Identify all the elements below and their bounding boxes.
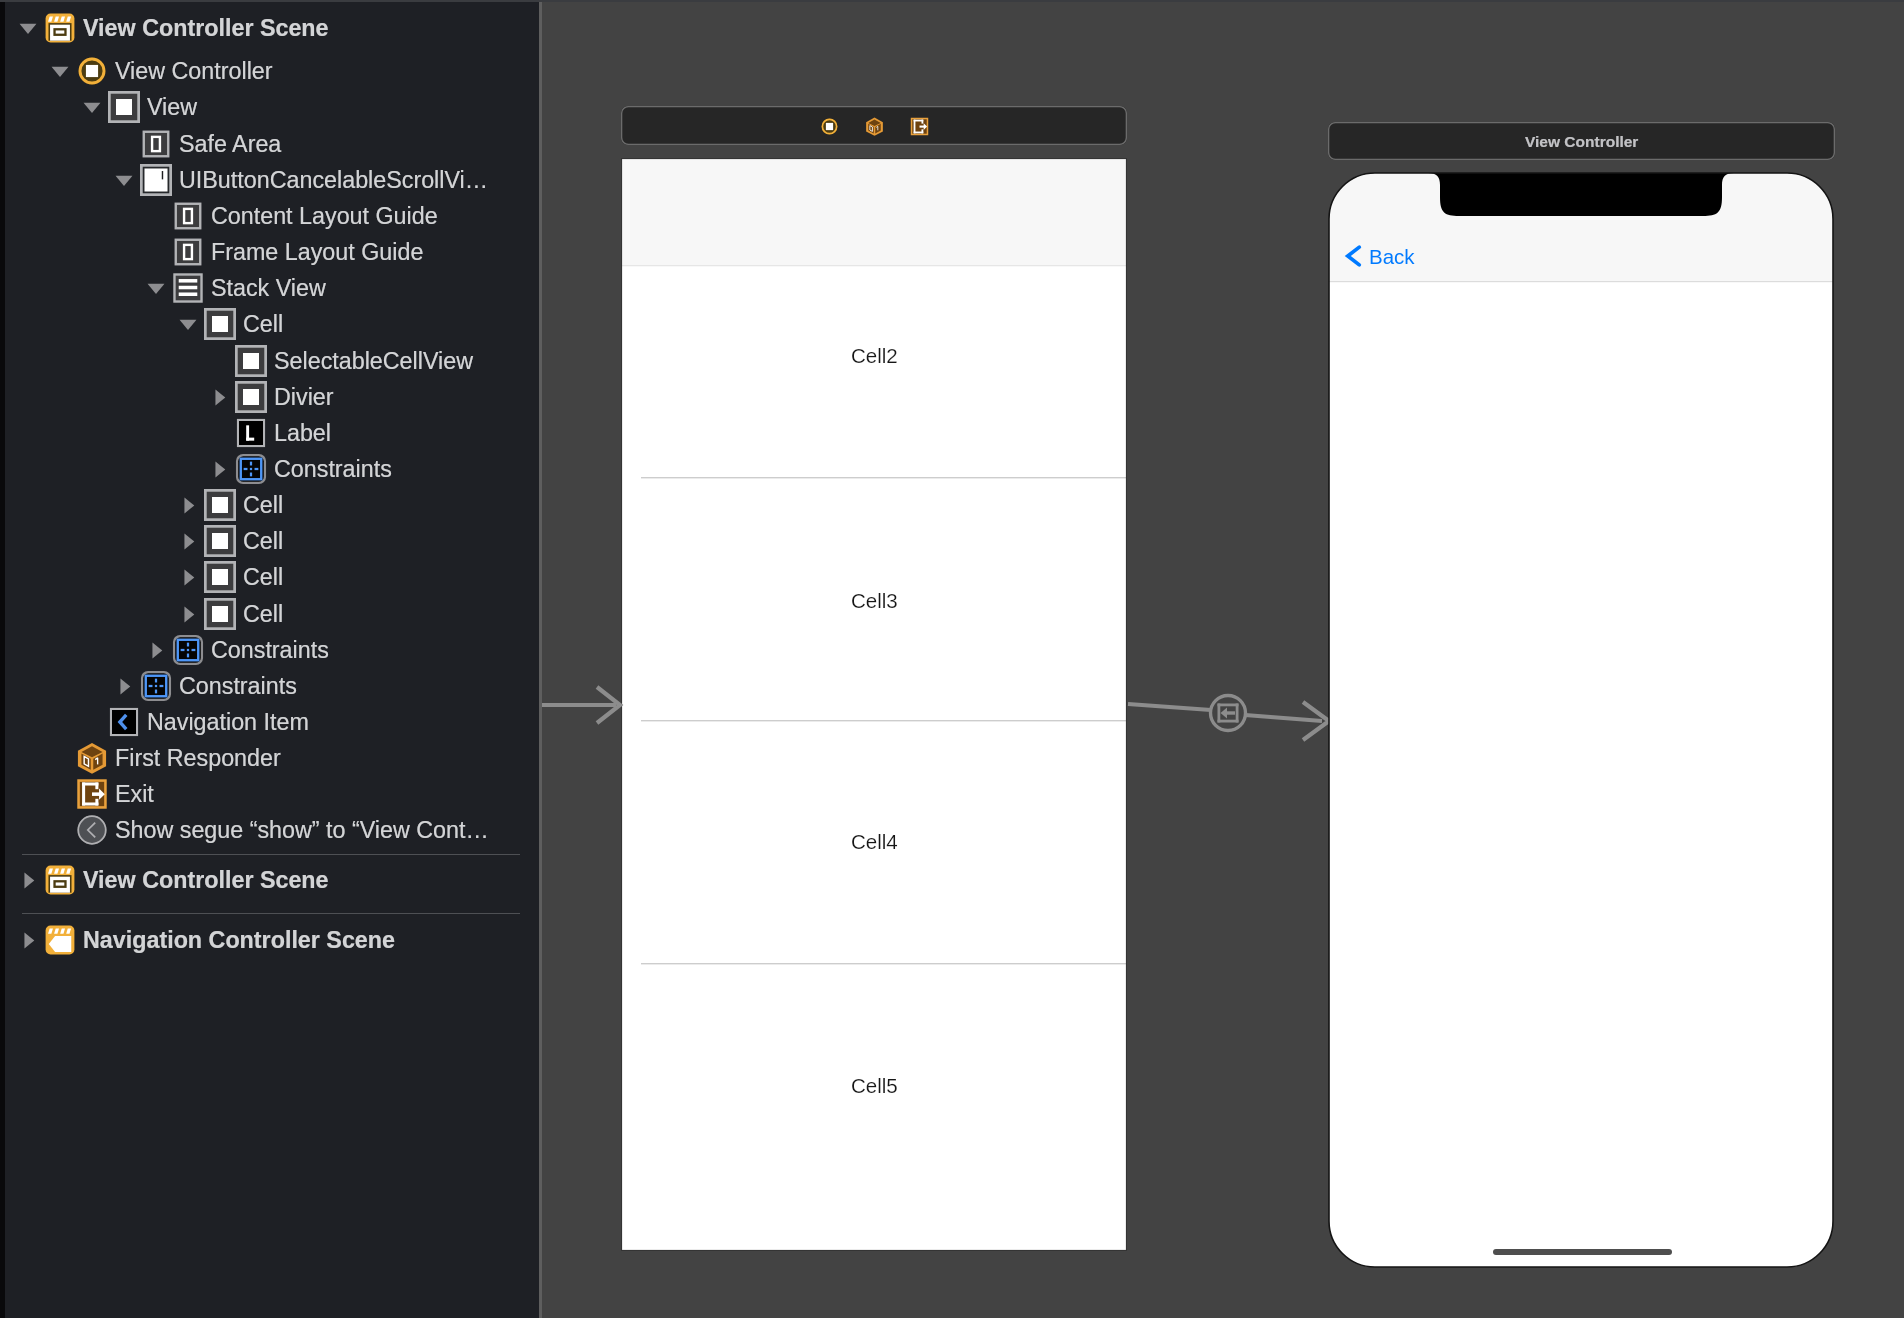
button[interactable]: First Responder [5,740,539,776]
button[interactable]: SelectableCellView [5,343,539,379]
button[interactable]: Cell [5,487,539,523]
staticText: Constraints [211,637,329,663]
button[interactable]: View Controller [816,113,842,139]
button[interactable]: Constraints [5,451,539,487]
staticText: Navigation Item [147,709,309,735]
button[interactable]: Cell [5,306,539,342]
button[interactable]: First Responder [861,113,887,139]
staticText: Stack View [211,275,326,301]
staticText: Divier [274,384,334,410]
staticText: Label [274,420,332,446]
staticText: Cell3 [851,589,898,612]
staticText: Cell [243,601,284,627]
staticText: Exit [115,781,154,807]
button[interactable]: View [5,89,539,125]
button[interactable]: UIButtonCancelableScrollVi… [5,162,539,198]
button[interactable]: View Controller [1328,122,1835,160]
button[interactable]: Navigation Item [5,704,539,740]
staticText: Cell5 [851,1074,898,1097]
staticText: Back [1369,245,1415,268]
staticText: Content Layout Guide [211,203,438,229]
staticText: First Responder [115,745,281,771]
staticText: View Controller Scene [83,15,329,41]
button[interactable]: Cell [5,559,539,595]
button[interactable]: View Controller Scene [5,10,539,46]
button[interactable]: Content Layout Guide [5,198,539,234]
button[interactable]: Cell2 [621,340,1127,370]
button[interactable]: Cell4 [621,826,1127,856]
button[interactable]: Exit [906,113,932,139]
button[interactable]: Safe Area [5,126,539,162]
staticText: View Controller [115,58,273,84]
button[interactable]: Cell [5,596,539,632]
button[interactable]: View Controller [5,53,539,89]
button[interactable]: Exit [5,776,539,812]
staticText: Constraints [179,673,297,699]
staticText: Show segue “show” to “View Cont… [115,817,489,843]
button[interactable]: Stack View [5,270,539,306]
button[interactable]: Back [1342,235,1415,277]
button[interactable]: Frame Layout Guide [5,234,539,270]
staticText: Cell [243,528,284,554]
button[interactable]: Cell3 [621,585,1127,615]
button[interactable]: Divier [5,379,539,415]
button[interactable]: Cell [5,523,539,559]
staticText: Frame Layout Guide [211,239,424,265]
button[interactable]: Constraints [5,632,539,668]
button[interactable]: Navigation Controller Scene [5,922,539,958]
staticText: Navigation Controller Scene [83,927,395,953]
staticText: Constraints [274,456,392,482]
staticText: Cell [243,492,284,518]
button[interactable]: View Controller Scene [5,862,539,898]
staticText: View Controller [1525,133,1639,150]
staticText: Safe Area [179,131,282,157]
button[interactable]: Cell5 [621,1070,1127,1100]
staticText: Cell [243,564,284,590]
staticText: Cell [243,311,284,337]
button[interactable]: Show segue “show” to “View Cont… [5,812,539,848]
staticText: Cell4 [851,830,898,853]
staticText: View [147,94,198,120]
staticText: SelectableCellView [274,348,474,374]
button[interactable]: Label [5,415,539,451]
staticText: UIButtonCancelableScrollVi… [179,167,489,193]
staticText: Cell2 [851,344,898,367]
staticText: View Controller Scene [83,867,329,893]
button[interactable]: Constraints [5,668,539,704]
